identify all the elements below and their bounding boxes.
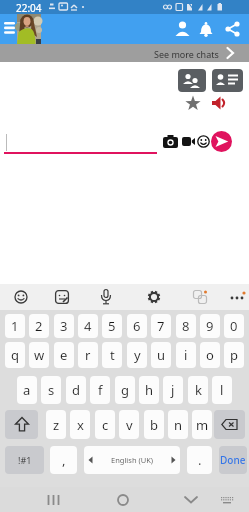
button[interactable] — [4, 22, 16, 35]
button[interactable] — [47, 494, 60, 506]
staticText: . — [198, 451, 202, 469]
button[interactable] — [211, 95, 227, 111]
button[interactable] — [225, 21, 240, 37]
button[interactable] — [214, 410, 245, 439]
button[interactable] — [230, 291, 246, 303]
button[interactable]: i — [176, 342, 196, 368]
button[interactable] — [4, 134, 157, 152]
staticText: See more chats — [154, 48, 219, 60]
staticText: 6 — [133, 317, 141, 335]
staticText: j — [171, 381, 175, 399]
staticText: 8 — [182, 317, 190, 335]
button[interactable] — [185, 95, 201, 111]
staticText: e — [60, 346, 68, 364]
button[interactable]: l — [212, 376, 232, 404]
button[interactable]: j — [163, 376, 183, 404]
button[interactable]: 2 — [29, 314, 49, 338]
button[interactable] — [163, 135, 178, 148]
button[interactable] — [5, 410, 38, 439]
staticText: t — [110, 346, 115, 364]
staticText: b — [150, 416, 158, 434]
button[interactable] — [184, 496, 198, 504]
button[interactable] — [212, 69, 243, 92]
button[interactable]: w — [29, 342, 49, 368]
button[interactable]: 4 — [78, 314, 98, 338]
staticText: c — [102, 416, 109, 434]
button[interactable]: q — [5, 342, 25, 368]
button[interactable] — [174, 21, 191, 37]
staticText: English (UK) — [111, 455, 154, 465]
staticText: i — [184, 346, 188, 364]
button[interactable]: g — [115, 376, 135, 404]
button[interactable] — [182, 137, 195, 146]
button[interactable]: English (UK) — [84, 446, 180, 474]
button[interactable]: m — [192, 410, 212, 439]
staticText: 7 — [157, 317, 165, 335]
button[interactable]: !#1 — [5, 446, 44, 474]
staticText: z — [53, 416, 60, 434]
button[interactable] — [55, 290, 69, 304]
staticText: v — [126, 416, 133, 434]
button[interactable]: e — [54, 342, 74, 368]
button[interactable]: 3 — [54, 314, 74, 338]
staticText: w — [34, 346, 45, 364]
button[interactable]: z — [46, 410, 66, 439]
staticText: 3 — [60, 317, 68, 335]
button[interactable]: f — [90, 376, 110, 404]
staticText: o — [206, 346, 214, 364]
staticText: s — [48, 381, 55, 399]
button[interactable] — [117, 494, 129, 506]
button[interactable]: h — [139, 376, 159, 404]
staticText: g — [121, 381, 129, 399]
button[interactable] — [100, 289, 112, 305]
button[interactable]: r — [78, 342, 98, 368]
button[interactable]: 8 — [176, 314, 196, 338]
staticText: x — [77, 416, 84, 434]
button[interactable] — [14, 290, 28, 304]
button[interactable]: v — [119, 410, 139, 439]
staticText: f — [98, 381, 103, 399]
button[interactable]: s — [41, 376, 61, 404]
button[interactable]: 1 — [5, 314, 25, 338]
button[interactable] — [220, 496, 234, 506]
staticText: l — [220, 381, 224, 399]
staticText: h — [145, 381, 154, 399]
button[interactable] — [178, 69, 206, 92]
button[interactable] — [17, 14, 41, 44]
staticText: k — [195, 381, 202, 399]
button[interactable] — [211, 131, 232, 152]
button[interactable] — [147, 290, 161, 304]
staticText: r — [85, 346, 91, 364]
button[interactable]: 0 — [224, 314, 244, 338]
button[interactable]: , — [50, 446, 77, 474]
button[interactable]: k — [188, 376, 208, 404]
staticText: 1 — [11, 317, 19, 335]
button[interactable]: a — [17, 376, 37, 404]
staticText: n — [174, 416, 183, 434]
button[interactable]: . — [187, 446, 212, 474]
button[interactable]: 9 — [200, 314, 220, 338]
button[interactable]: 7 — [151, 314, 171, 338]
button[interactable]: x — [70, 410, 90, 439]
button[interactable] — [193, 290, 207, 304]
button[interactable] — [197, 135, 210, 148]
button[interactable]: u — [151, 342, 171, 368]
button[interactable] — [0, 44, 249, 62]
button[interactable]: 6 — [127, 314, 147, 338]
button[interactable]: o — [200, 342, 220, 368]
button[interactable]: t — [102, 342, 122, 368]
button[interactable]: b — [144, 410, 164, 439]
staticText: Done — [220, 453, 246, 467]
button[interactable]: n — [168, 410, 188, 439]
button[interactable]: Done — [219, 446, 247, 474]
button[interactable]: 5 — [102, 314, 122, 338]
button[interactable] — [198, 21, 214, 37]
button[interactable]: d — [66, 376, 86, 404]
button[interactable]: c — [95, 410, 115, 439]
staticText: 5 — [108, 317, 116, 335]
staticText: , — [62, 451, 66, 469]
staticText: a — [23, 381, 31, 399]
button[interactable]: p — [224, 342, 244, 368]
staticText: !#1 — [18, 454, 32, 466]
button[interactable]: y — [127, 342, 147, 368]
